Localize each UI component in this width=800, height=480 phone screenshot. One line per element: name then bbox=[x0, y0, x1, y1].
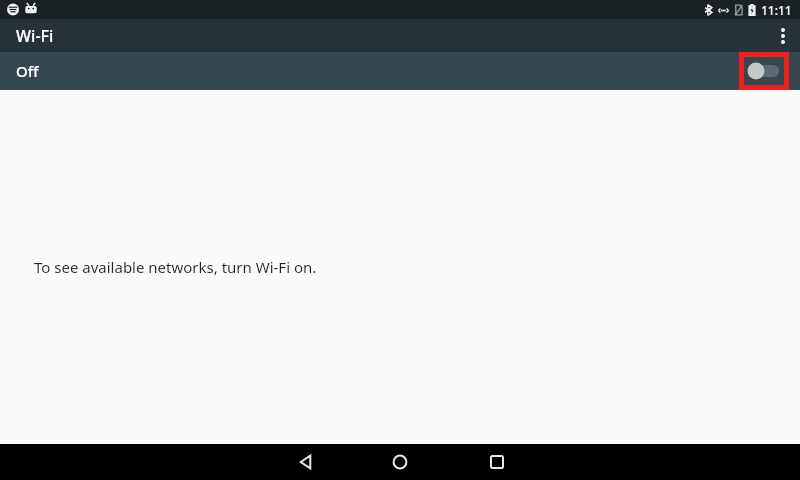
button[interactable]: More options bbox=[766, 19, 800, 52]
button[interactable]: Back bbox=[281, 444, 329, 480]
button[interactable]: Toggle Wi-Fi bbox=[739, 52, 789, 90]
staticText: 11:11 bbox=[761, 2, 792, 18]
staticText: Off bbox=[16, 61, 39, 81]
staticText: Wi-Fi bbox=[16, 25, 54, 47]
staticText: To see available networks, turn Wi-Fi on… bbox=[34, 257, 317, 277]
button[interactable]: Off bbox=[0, 52, 800, 90]
button[interactable]: Recent apps bbox=[473, 444, 521, 480]
button[interactable]: Home bbox=[376, 444, 424, 480]
